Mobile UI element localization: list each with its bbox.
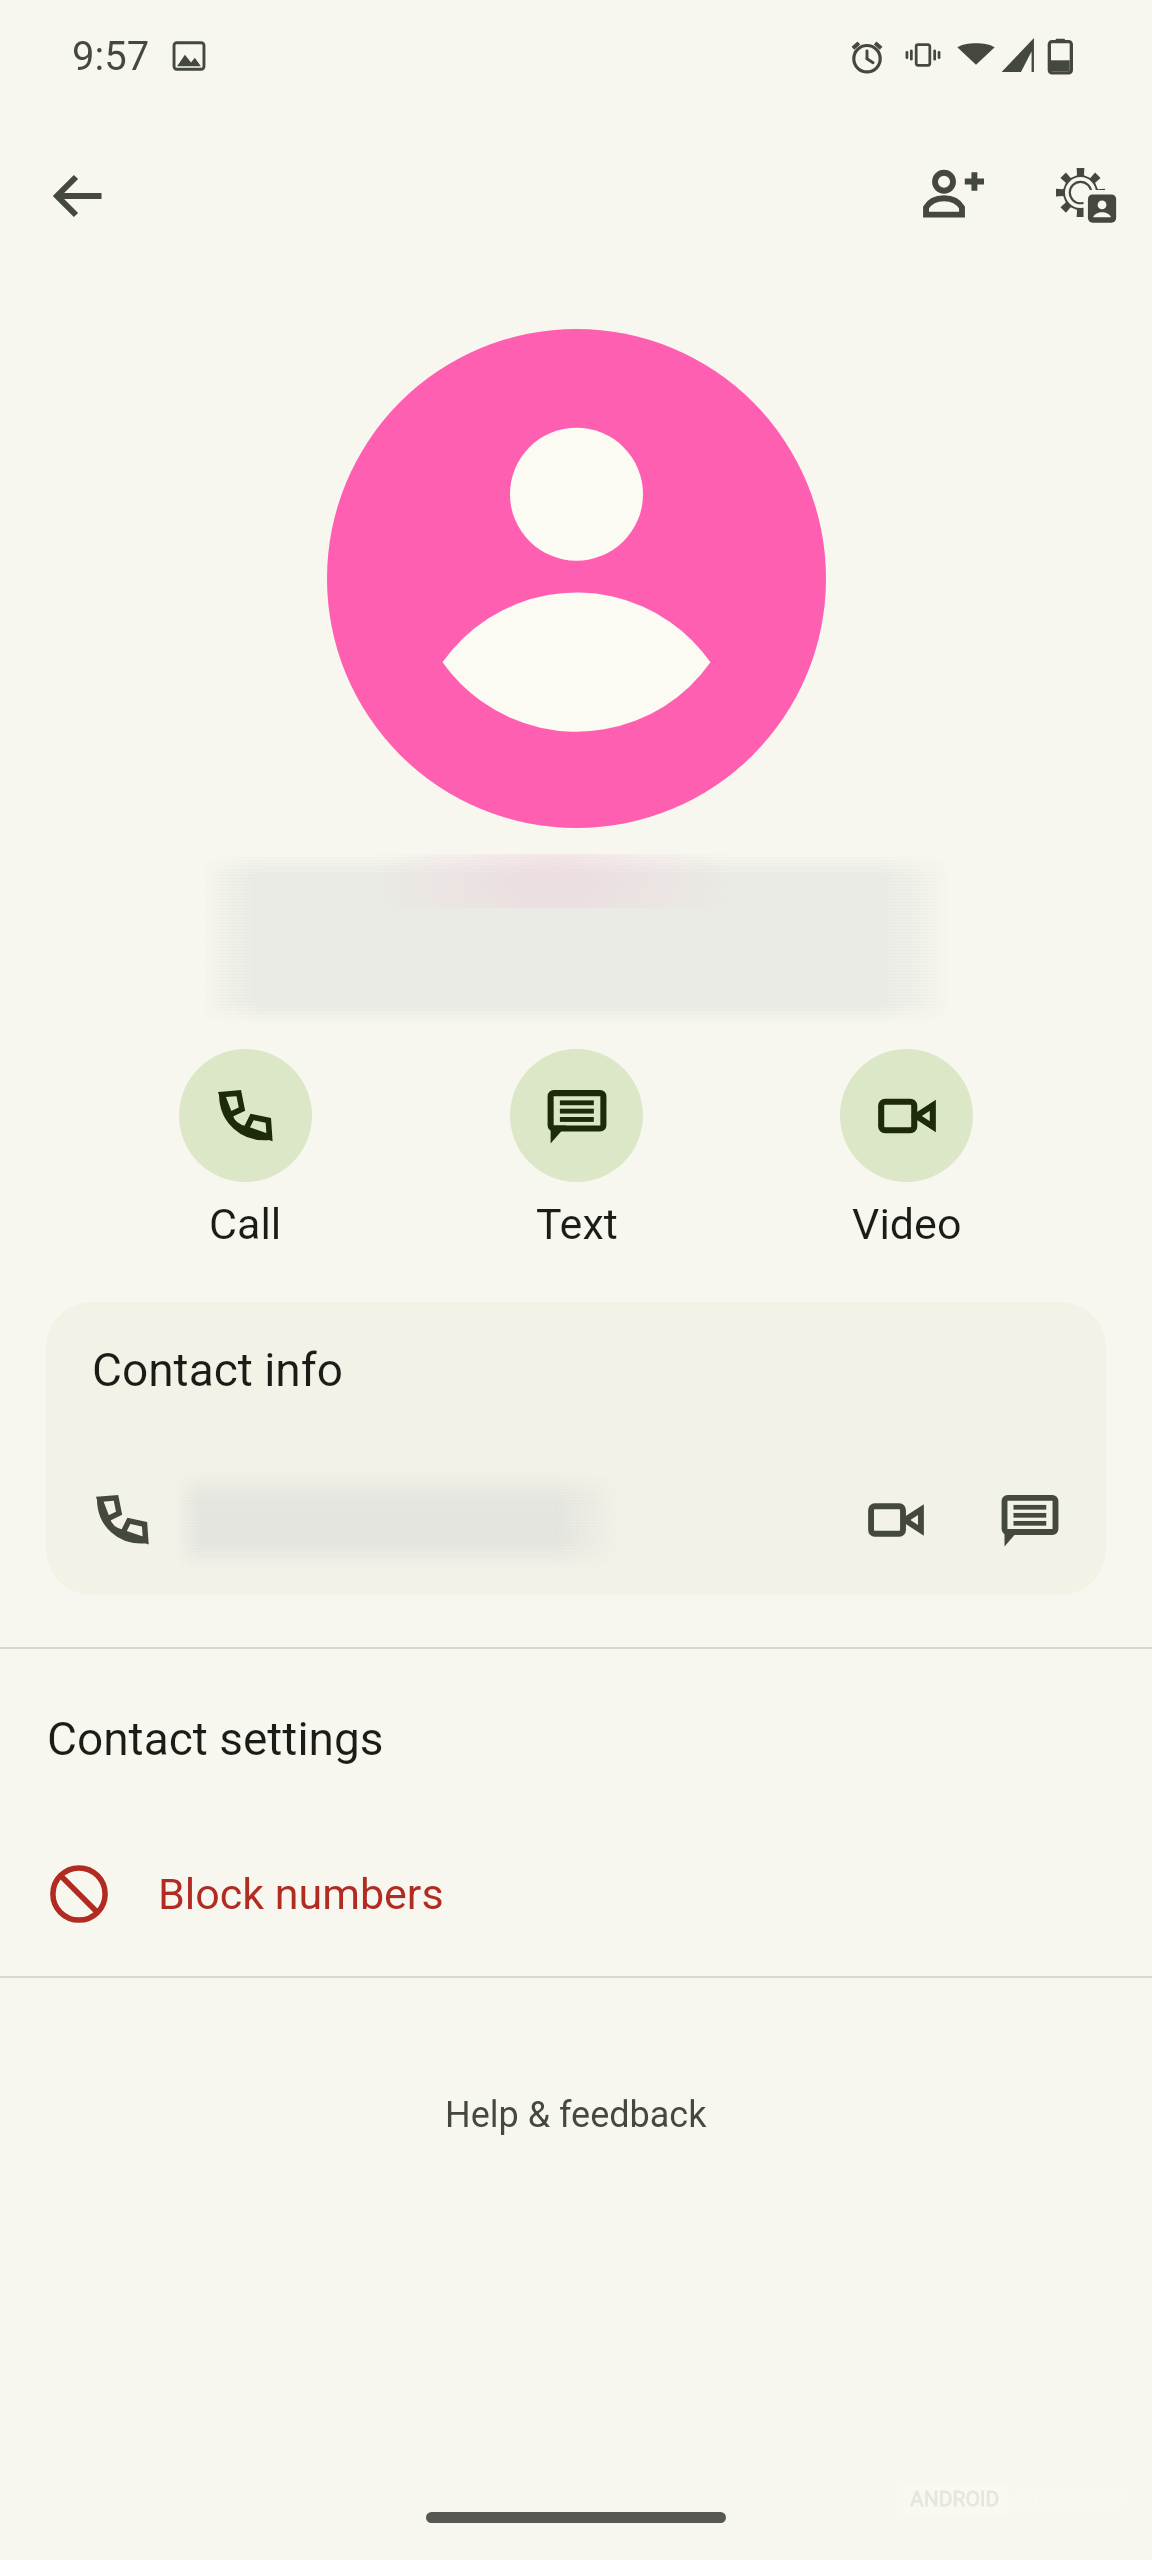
button[interactable]: Video call (46, 1472, 1106, 1568)
button[interactable]: Video (840, 1049, 973, 1249)
button[interactable]: Back (30, 148, 126, 244)
button[interactable]: Text (510, 1049, 643, 1249)
button[interactable]: Contact settings (1039, 148, 1135, 244)
button[interactable]: Block numbers (0, 1846, 1152, 1942)
button[interactable]: Help & feedback (415, 2080, 737, 2150)
staticText: Contact info (92, 1343, 344, 1397)
staticText: Block numbers (158, 1869, 444, 1919)
staticText: Video (852, 1199, 962, 1249)
staticText: Help & feedback (445, 2094, 707, 2136)
staticText: Contact settings (47, 1712, 384, 1766)
button[interactable]: Send message (982, 1472, 1078, 1568)
staticText: 9:57 (72, 33, 150, 80)
button[interactable]: Video call (848, 1472, 944, 1568)
staticText: ANDROID (910, 2487, 1000, 2512)
button[interactable]: Call (179, 1049, 312, 1249)
staticText: Text (536, 1199, 618, 1249)
staticText: Call (209, 1199, 282, 1249)
button[interactable]: Add contact (905, 148, 1001, 244)
